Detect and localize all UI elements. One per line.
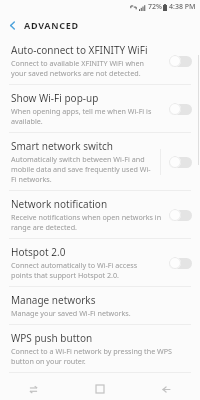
button[interactable]: Manage networks bbox=[0, 287, 200, 324]
staticText: points that support Hotspot 2.0. bbox=[11, 270, 120, 280]
staticText: When opening apps, tell me when Wi-Fi is bbox=[11, 106, 152, 116]
button[interactable]: Auto-connect to XFINITY WiFi switch bbox=[166, 51, 195, 71]
button[interactable]: Back bbox=[0, 13, 24, 37]
staticText: available. bbox=[11, 116, 43, 126]
staticText: Connect to available XFINITY WiFi when bbox=[11, 58, 144, 68]
staticText: mobile data and save frequently used Wi- bbox=[11, 164, 151, 174]
button[interactable]: Network notification bbox=[0, 191, 200, 238]
button[interactable]: Home bbox=[66, 378, 133, 400]
staticText: Automatically switch between Wi-Fi and bbox=[11, 154, 145, 164]
staticText: Manage networks bbox=[11, 293, 96, 307]
staticText: range are detected. bbox=[11, 222, 77, 232]
button[interactable]: WPS push button bbox=[0, 325, 200, 372]
button[interactable]: Recents bbox=[0, 378, 66, 400]
staticText: Connect automatically to Wi-Fi access bbox=[11, 260, 138, 270]
button[interactable]: Smart network switch bbox=[0, 133, 200, 190]
staticText: Auto-connect to XFINITY WiFi bbox=[11, 43, 148, 57]
staticText: Manage your saved Wi-Fi networks. bbox=[11, 308, 131, 318]
staticText: ADVANCED bbox=[24, 19, 79, 31]
staticText: WPS push button bbox=[11, 331, 93, 345]
button[interactable]: Hotspot 2.0 bbox=[0, 239, 200, 286]
button[interactable]: Smart network switch switch bbox=[166, 152, 195, 172]
button[interactable]: Show Wi-Fi pop-up bbox=[0, 85, 200, 132]
button[interactable]: Network notification switch bbox=[166, 205, 195, 225]
staticText: Show Wi-Fi pop-up bbox=[11, 91, 99, 105]
button[interactable]: Auto-connect to XFINITY WiFi bbox=[0, 37, 200, 84]
staticText: 72% bbox=[148, 2, 162, 12]
staticText: Hotspot 2.0 bbox=[11, 245, 66, 259]
staticText: Network notification bbox=[11, 197, 108, 211]
button[interactable]: Hotspot 2.0 switch bbox=[166, 253, 195, 273]
staticText: Smart network switch bbox=[11, 139, 114, 153]
staticText: button on your router. bbox=[11, 356, 86, 366]
staticText: Connect to a Wi-Fi network by pressing t… bbox=[11, 346, 173, 356]
button[interactable]: Back bbox=[133, 378, 200, 400]
staticText: your saved networks are not detected. bbox=[11, 68, 141, 78]
button[interactable]: Show Wi-Fi pop-up switch bbox=[166, 99, 195, 119]
staticText: Receive notifications when open networks… bbox=[11, 212, 162, 222]
staticText: 4:38 PM bbox=[169, 2, 196, 12]
staticText: Fi networks. bbox=[11, 174, 52, 184]
